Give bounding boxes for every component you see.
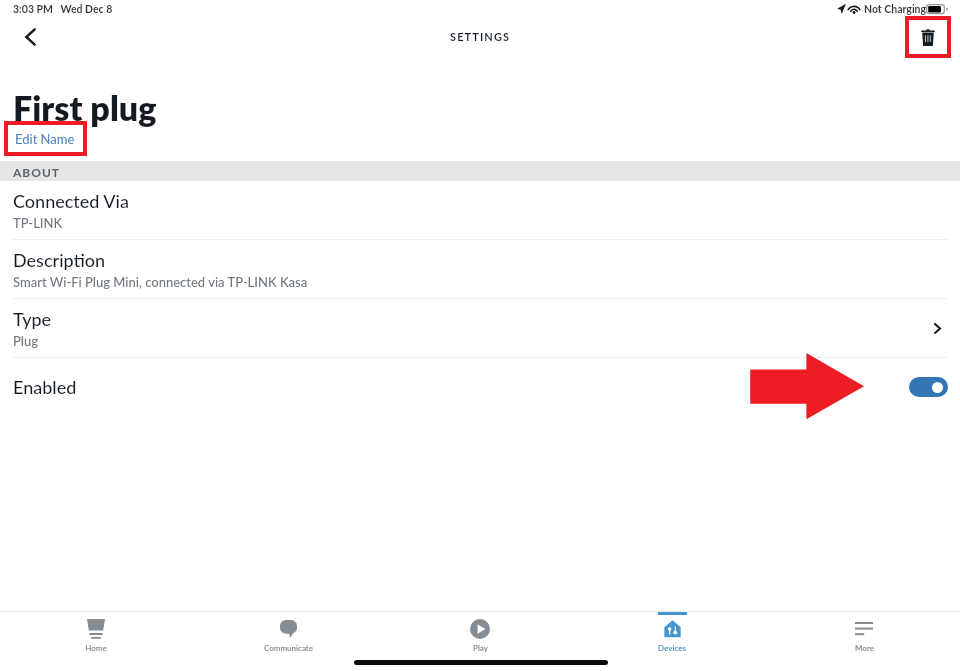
- staticText: Home: [85, 643, 107, 653]
- button[interactable]: Back: [8, 18, 53, 55]
- button[interactable]: Enabled: [0, 367, 960, 407]
- button[interactable]: Play: [384, 612, 576, 659]
- staticText: ABOUT: [13, 165, 61, 179]
- staticText: Type: [13, 308, 52, 330]
- staticText: Play: [473, 643, 488, 653]
- staticText: Communicate: [264, 643, 313, 653]
- staticText: First plug: [13, 87, 157, 128]
- button[interactable]: Type: [0, 299, 960, 358]
- button[interactable]: Enabled toggle: [909, 377, 948, 397]
- staticText: Not Charging: [864, 3, 927, 16]
- button[interactable]: Home: [0, 612, 192, 659]
- staticText: Edit Name: [15, 131, 75, 147]
- staticText: 3:03 PM Wed Dec 8: [13, 3, 113, 16]
- button[interactable]: More: [768, 612, 960, 659]
- staticText: Connected Via: [13, 190, 129, 212]
- staticText: Description: [13, 249, 106, 271]
- staticText: Enabled: [13, 376, 77, 398]
- staticText: Smart Wi-Fi Plug Mini, connected via TP-…: [13, 274, 308, 290]
- staticText: SETTINGS: [450, 30, 511, 43]
- staticText: TP-LINK: [13, 215, 63, 231]
- button[interactable]: Connected Via: [0, 181, 960, 240]
- staticText: Plug: [13, 333, 38, 349]
- staticText: Devices: [658, 643, 686, 653]
- button[interactable]: Description: [0, 240, 960, 299]
- button[interactable]: Delete: [909, 20, 947, 54]
- staticText: More: [855, 643, 874, 653]
- button[interactable]: Communicate: [192, 612, 384, 659]
- button[interactable]: Devices: [576, 612, 768, 659]
- button[interactable]: Edit Name: [8, 125, 83, 152]
